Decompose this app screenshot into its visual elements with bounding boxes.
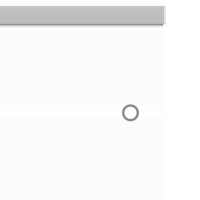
button[interactable]: Select	[123, 105, 138, 120]
button[interactable]: Toolbar	[0, 0, 163, 31]
